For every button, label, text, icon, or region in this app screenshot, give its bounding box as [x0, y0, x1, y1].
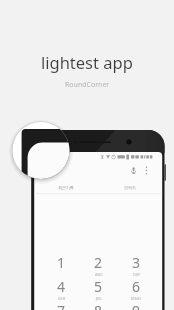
staticText: ABC	[95, 272, 103, 277]
staticText: 연락처	[124, 185, 136, 190]
staticText: 9	[132, 301, 141, 310]
button[interactable]: 9	[120, 301, 152, 310]
staticText: RoundCorner	[65, 80, 110, 90]
staticText: JKL	[96, 296, 102, 301]
button[interactable]: 1	[45, 253, 77, 277]
staticText: 3	[132, 253, 141, 272]
staticText: GHI	[58, 296, 66, 301]
staticText: 1	[57, 253, 66, 272]
staticText: DEF	[133, 272, 141, 277]
button[interactable]: 연락처	[98, 181, 162, 193]
button[interactable]: 6	[120, 277, 152, 301]
staticText: MNO	[131, 296, 141, 301]
staticText: 6	[132, 277, 141, 296]
staticText: 최근기록	[58, 185, 74, 190]
staticText: 7	[57, 301, 66, 310]
staticText: 8	[94, 301, 103, 310]
button[interactable]: 최근기록	[34, 181, 98, 193]
button[interactable]: 2	[82, 253, 114, 277]
button[interactable]: 4	[45, 277, 77, 301]
button[interactable]: 3	[120, 253, 152, 277]
button[interactable]: 5	[82, 277, 114, 301]
staticText: 2	[94, 253, 103, 272]
button[interactable]: 8	[82, 301, 114, 310]
staticText: 5	[94, 277, 103, 296]
button[interactable]: 7	[45, 301, 77, 310]
staticText: 4	[57, 277, 66, 296]
staticText: lightest app	[41, 51, 133, 73]
